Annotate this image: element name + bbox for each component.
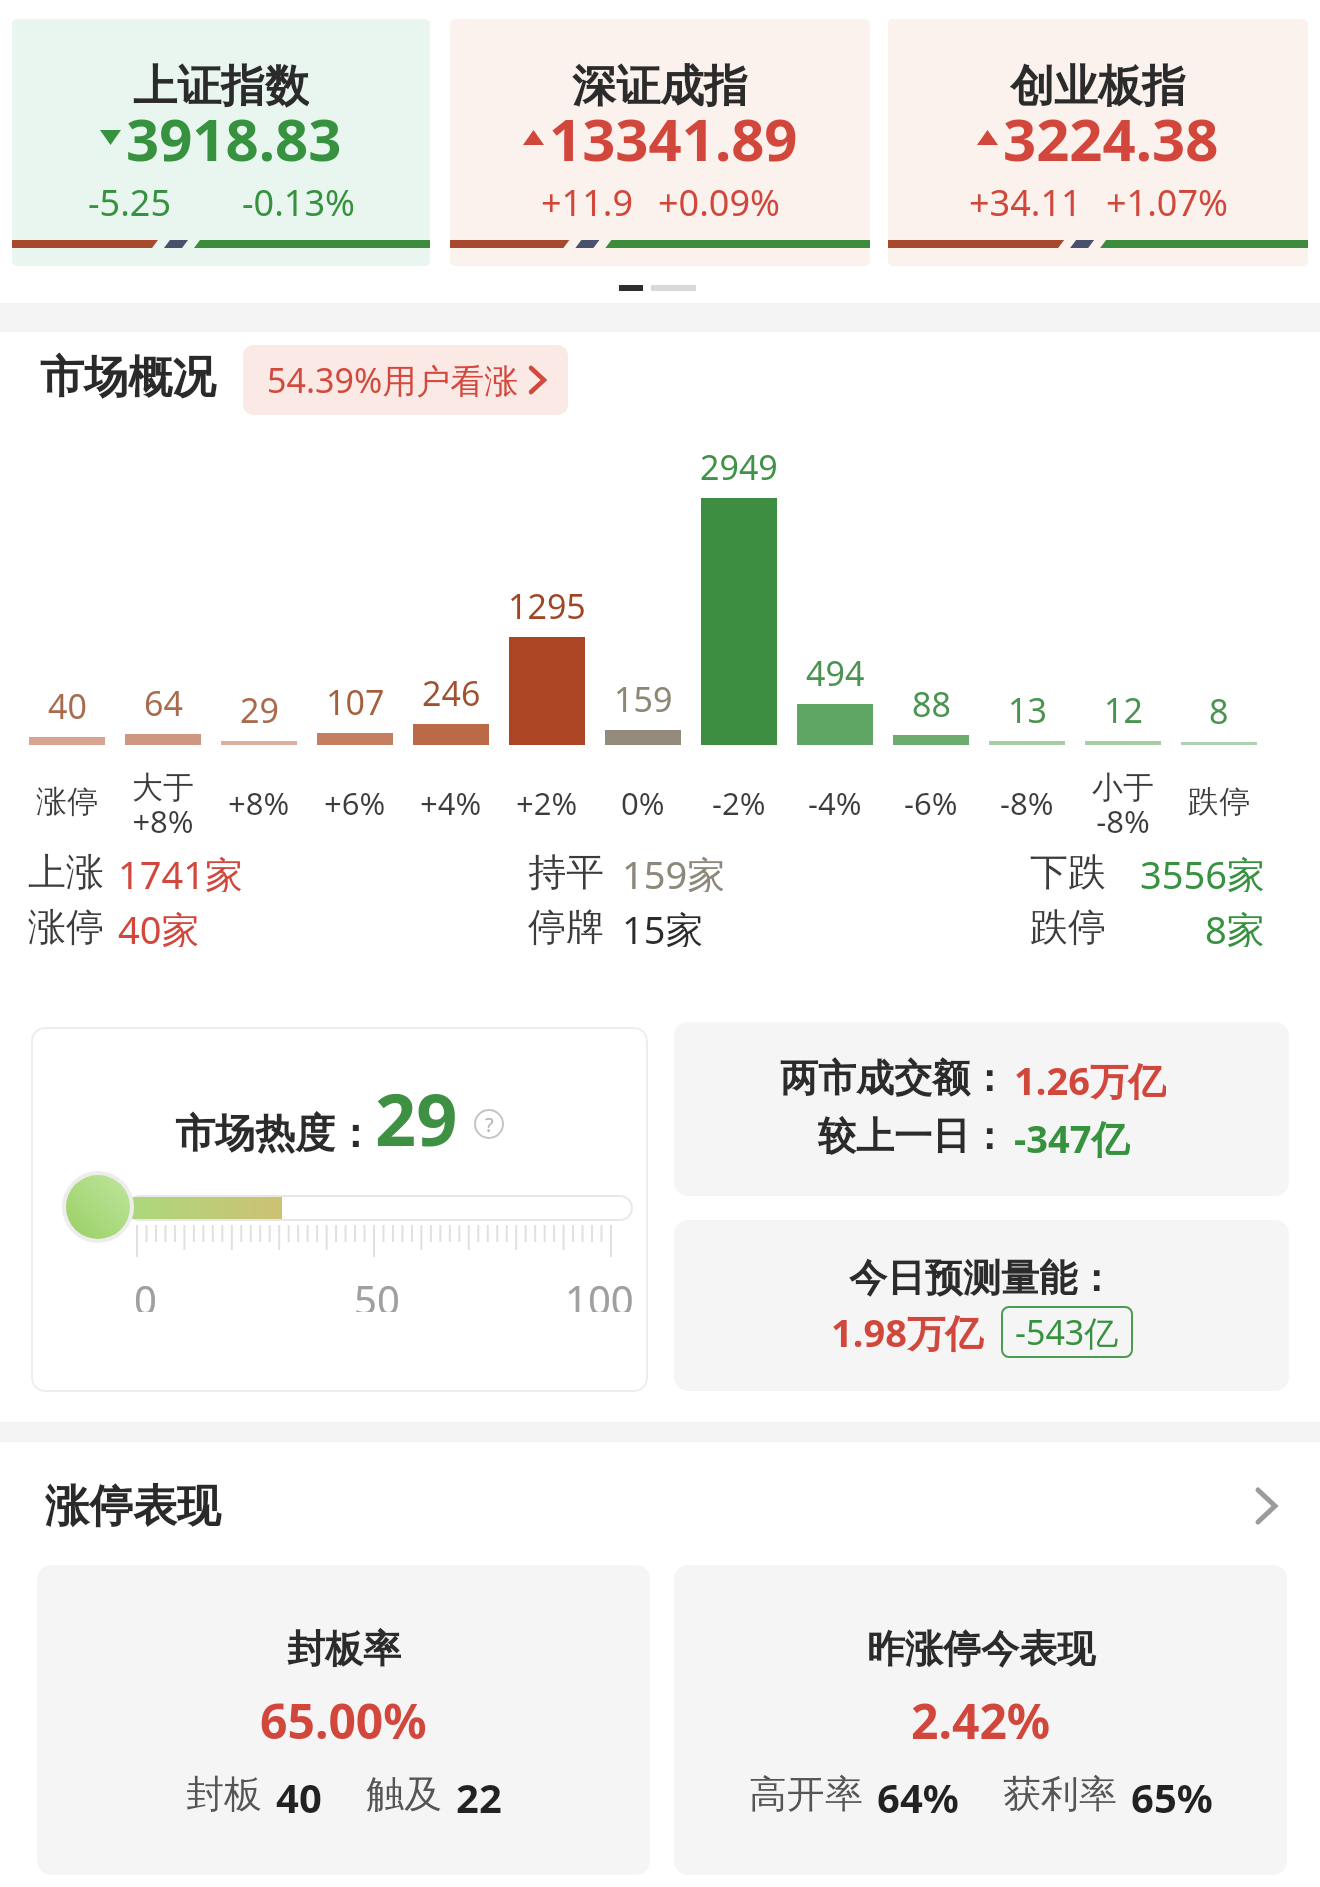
staticText: 0% <box>621 782 665 820</box>
staticText: 创业板指 <box>1010 59 1186 111</box>
staticText: 今日预测量能： <box>849 1254 1115 1302</box>
staticText: +6% <box>324 782 386 820</box>
staticText: 3918.83 <box>126 99 342 175</box>
staticText: 封板率 <box>287 1625 401 1673</box>
staticText: 29 <box>240 687 279 727</box>
staticText: 1741家 <box>118 848 243 892</box>
staticText: 65% <box>1131 1770 1213 1816</box>
staticText: 高开率 <box>749 1770 863 1816</box>
staticText: 15家 <box>622 903 704 947</box>
staticText: ? <box>485 1111 494 1138</box>
staticText: 88 <box>912 681 951 721</box>
staticText: 0 <box>134 1272 157 1312</box>
staticText: 上涨 <box>28 848 104 892</box>
staticText: 3556家 <box>1140 848 1265 892</box>
staticText: 29 <box>375 1069 458 1167</box>
staticText: 涨停 <box>28 903 104 947</box>
button[interactable]: 今日预测量能： <box>674 1220 1289 1391</box>
staticText: 64 <box>144 680 183 720</box>
staticText: 下跌 <box>1030 848 1106 892</box>
staticText: 深证成指 <box>572 59 748 111</box>
button[interactable]: 54.39%用户看涨 <box>243 345 568 415</box>
staticText: 涨停 <box>36 782 98 820</box>
staticText: 22 <box>456 1770 502 1816</box>
staticText: +0.09% <box>658 178 780 226</box>
staticText: +1.07% <box>1106 178 1228 226</box>
button[interactable]: 封板率 <box>37 1565 650 1875</box>
staticText: -4% <box>808 782 862 820</box>
staticText: 246 <box>422 670 481 710</box>
staticText: 触及 <box>366 1770 442 1816</box>
staticText: 40 <box>276 1770 322 1816</box>
staticText: 市场概况 <box>40 350 216 405</box>
staticText: +34.11 <box>969 178 1082 226</box>
staticText: +2% <box>516 782 578 820</box>
staticText: 小于 -8% <box>1092 768 1154 836</box>
staticText: -8% <box>1000 782 1054 820</box>
staticText: 107 <box>326 679 385 719</box>
button[interactable]: 涨停表现 <box>0 1478 1320 1534</box>
staticText: +8% <box>228 782 290 820</box>
staticText: 封板 <box>186 1770 262 1816</box>
button[interactable]: 深证成指 <box>450 19 870 266</box>
button[interactable]: 两市成交额： <box>674 1022 1289 1196</box>
button[interactable]: 创业板指 <box>888 19 1308 266</box>
staticText: 54.39%用户看涨 <box>267 357 519 403</box>
staticText: 2.42% <box>911 1688 1051 1740</box>
staticText: 494 <box>806 650 865 690</box>
staticText: 1.98万亿 <box>831 1306 983 1358</box>
staticText: 跌停 <box>1188 782 1250 820</box>
staticText: 市场热度： <box>175 1108 375 1158</box>
staticText: +11.9 <box>541 178 634 226</box>
staticText: +4% <box>420 782 482 820</box>
staticText: 较上一日： <box>818 1112 1008 1160</box>
staticText: 3224.38 <box>1003 99 1219 175</box>
staticText: 65.00% <box>260 1688 427 1740</box>
staticText: 13 <box>1008 687 1047 727</box>
staticText: 50 <box>354 1272 400 1312</box>
staticText: 40家 <box>118 903 200 947</box>
staticText: 12 <box>1104 687 1143 727</box>
staticText: 64% <box>877 1770 959 1816</box>
staticText: -543亿 <box>1015 1309 1119 1355</box>
staticText: 两市成交额： <box>780 1054 1008 1102</box>
staticText: 跌停 <box>1030 903 1106 947</box>
button[interactable]: ? <box>474 1109 504 1139</box>
staticText: 昨涨停今表现 <box>867 1625 1095 1673</box>
staticText: -347亿 <box>1014 1112 1130 1160</box>
staticText: 40 <box>48 683 87 723</box>
staticText: 159 <box>614 676 673 716</box>
staticText: 8家 <box>1205 903 1265 947</box>
staticText: 13341.89 <box>549 99 798 175</box>
staticText: -0.13% <box>242 178 355 226</box>
button[interactable]: 上证指数 <box>12 19 430 266</box>
staticText: -5.25 <box>88 178 172 226</box>
button[interactable]: 昨涨停今表现 <box>674 1565 1287 1875</box>
staticText: 持平 <box>528 848 604 892</box>
staticText: 159家 <box>622 848 726 892</box>
staticText: -6% <box>904 782 958 820</box>
staticText: 停牌 <box>528 903 604 947</box>
staticText: 1295 <box>508 583 586 623</box>
staticText: -2% <box>712 782 766 820</box>
staticText: 上证指数 <box>133 59 309 111</box>
staticText: 1.26万亿 <box>1014 1054 1166 1102</box>
staticText: 大于 +8% <box>132 768 194 836</box>
staticText: 获利率 <box>1003 1770 1117 1816</box>
staticText: 100 <box>565 1272 634 1312</box>
staticText: 涨停表现 <box>45 1479 221 1534</box>
staticText: 2949 <box>700 444 778 484</box>
button[interactable]: 市场热度： <box>31 1027 648 1392</box>
staticText: 8 <box>1209 688 1229 728</box>
